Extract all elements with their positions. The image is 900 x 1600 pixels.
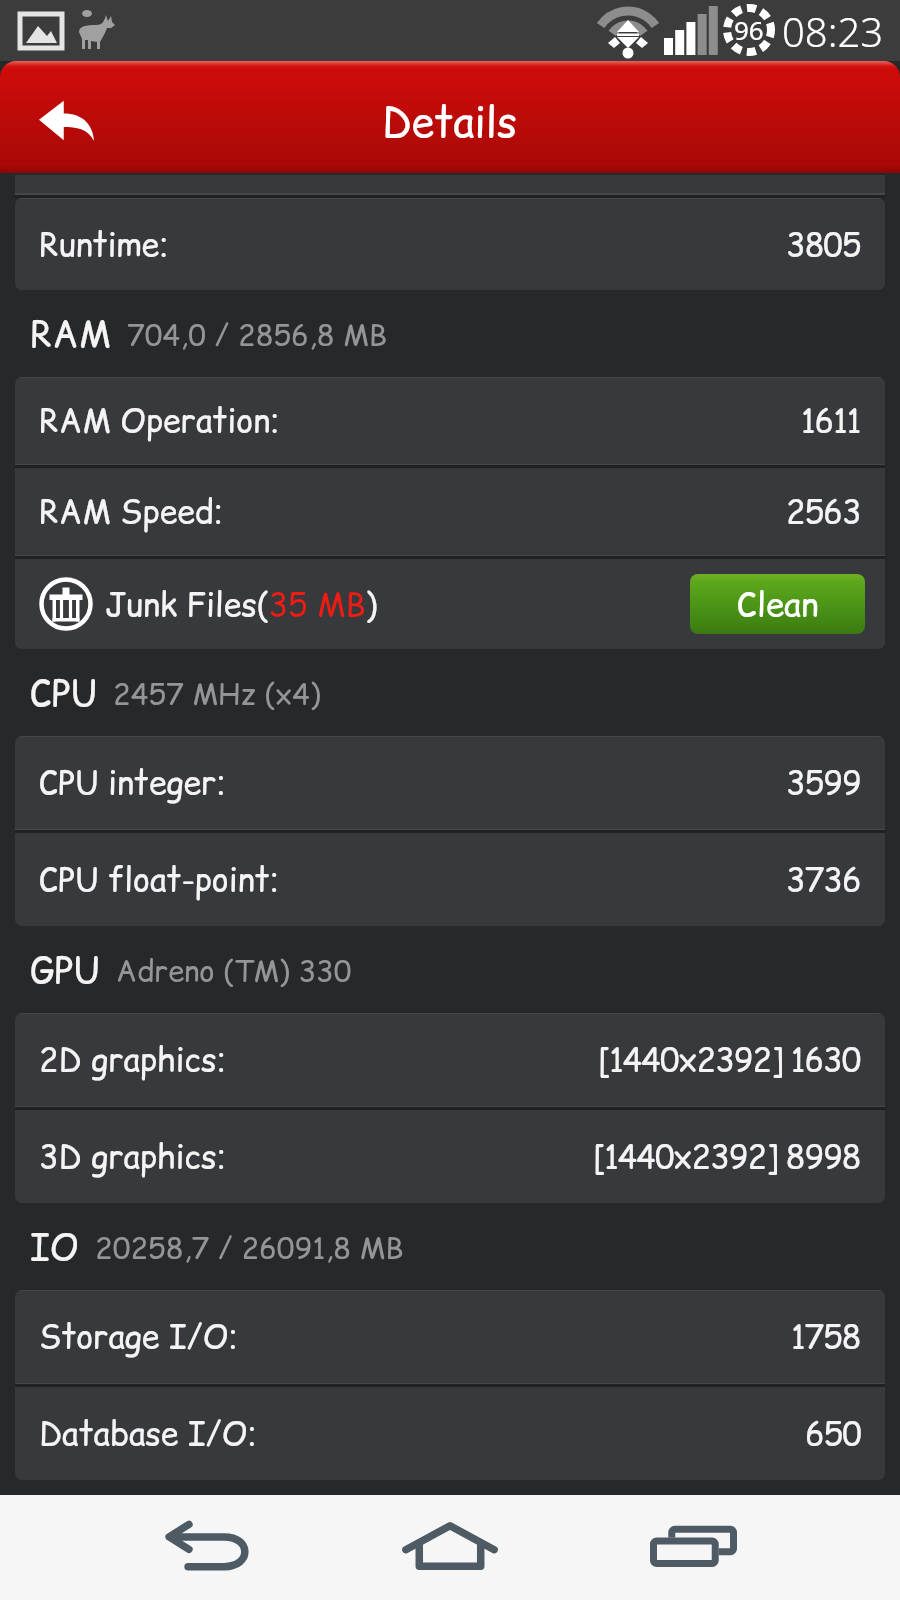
staticText: 08:23 [782,4,884,58]
button[interactable]: Database I/O: [15,1387,885,1480]
staticText: 96 [734,12,764,47]
staticText: Details [382,94,518,151]
staticText: Runtime: [39,222,169,267]
button[interactable]: 3D graphics: [15,1110,885,1203]
staticText: RAM Operation: [39,398,280,443]
button[interactable]: CPU integer: [15,736,885,829]
button[interactable]: RAM Speed: [15,468,885,555]
button[interactable]: Runtime: [15,198,885,290]
staticText: 1758 [791,1314,861,1359]
button[interactable]: CPU float-point: [15,833,885,926]
staticText: CPU integer: [39,760,226,805]
staticText: Database I/O: [39,1411,257,1456]
staticText: Storage I/O: [39,1314,238,1359]
button[interactable]: Back [0,62,120,174]
staticText: GPU [30,945,100,995]
staticText: 1611 [801,398,861,443]
staticText: 3736 [786,857,861,902]
staticText: IO [30,1222,79,1272]
staticText: CPU float-point: [39,857,280,902]
staticText: 650 [805,1411,861,1456]
button[interactable]: Home [390,1495,510,1600]
button[interactable]: 2D graphics: [15,1013,885,1106]
staticText: 2D graphics: [39,1037,227,1082]
staticText: Junk Files(35 MB) [105,582,378,627]
staticText: 2457 MHz (x4) [113,673,321,713]
staticText: [1440x2392] 8998 [593,1134,861,1179]
staticText: 2563 [786,489,861,534]
staticText: 3D graphics: [39,1134,227,1179]
staticText: CPU [30,668,97,718]
staticText: 3599 [786,760,861,805]
staticText: 3805 [786,222,861,267]
staticText: 704,0 / 2856,8 MB [127,314,388,354]
staticText: 20258,7 / 26091,8 MB [95,1227,404,1267]
button[interactable]: Recents [633,1495,753,1600]
button[interactable]: Clean [690,574,865,634]
staticText: Clean [737,581,819,627]
staticText: Adreno (TM) 330 [116,950,352,990]
staticText: RAM Speed: [39,489,224,534]
button[interactable]: Junk files [39,577,93,631]
staticText: [1440x2392] 1630 [598,1037,861,1082]
button[interactable]: Back [147,1495,267,1600]
staticText: RAM [30,309,111,359]
button[interactable]: RAM Operation: [15,377,885,464]
button[interactable]: Storage I/O: [15,1290,885,1383]
